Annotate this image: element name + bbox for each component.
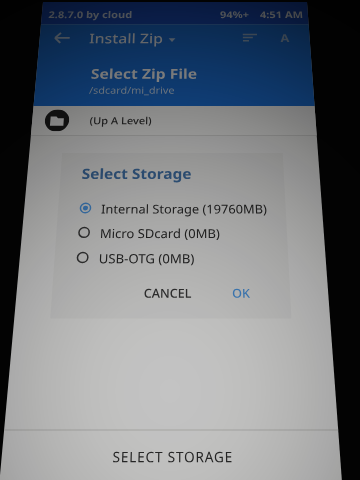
staticText: 4:51 AM — [295, 10, 354, 30]
button[interactable]: (Up A Level) — [0, 160, 360, 201]
staticText: 2.8.7.0 by cloud — [9, 10, 123, 30]
staticText: Select Zip File — [71, 98, 210, 126]
button[interactable]: Install Zip — [66, 44, 181, 73]
button[interactable]: Font size — [308, 38, 346, 76]
button[interactable]: Sort — [261, 38, 299, 76]
staticText: Select Storage — [67, 241, 203, 267]
button[interactable]: Internal Storage (19760MB) — [41, 286, 316, 312]
staticText: Internal Storage (19760MB) — [93, 289, 294, 310]
staticText: /sdcard/mi_drive — [70, 127, 181, 146]
staticText: 94%+ — [241, 10, 281, 30]
button[interactable]: USB-OTG (0MB) — [41, 348, 316, 374]
button[interactable]: Back — [8, 36, 50, 78]
staticText: (Up A Level) — [73, 171, 152, 190]
staticText: Install Zip — [66, 44, 165, 73]
button[interactable]: Micro SDcard (0MB) — [41, 317, 316, 343]
